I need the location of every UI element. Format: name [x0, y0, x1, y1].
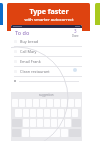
button[interactable]: Type faster — [7, 3, 90, 144]
button[interactable]: Previous screenshot — [0, 3, 3, 144]
button[interactable]: Key — [58, 119, 64, 127]
button[interactable]: Email Frank — [14, 57, 79, 66]
button[interactable]: Space — [30, 129, 60, 137]
button[interactable]: Next screenshot — [95, 3, 100, 144]
button[interactable]: Key — [65, 109, 71, 117]
staticText: To do — [15, 29, 30, 36]
staticText: Call Mary — [20, 49, 37, 54]
staticText: with smarter autocorrect — [24, 17, 74, 23]
staticText: Done — [72, 34, 79, 37]
staticText: Email Frank — [20, 59, 41, 64]
staticText: 3 — [74, 28, 77, 34]
button[interactable]: Call Mary — [14, 47, 79, 56]
button[interactable]: Clean restaurant — [14, 67, 79, 76]
staticText: Type faster — [29, 7, 69, 17]
button[interactable]: Buy bread — [14, 37, 79, 46]
staticText: Buy bread — [20, 39, 39, 44]
staticText: suggestion — [39, 93, 54, 97]
staticText: Clean restaurant — [20, 69, 50, 74]
